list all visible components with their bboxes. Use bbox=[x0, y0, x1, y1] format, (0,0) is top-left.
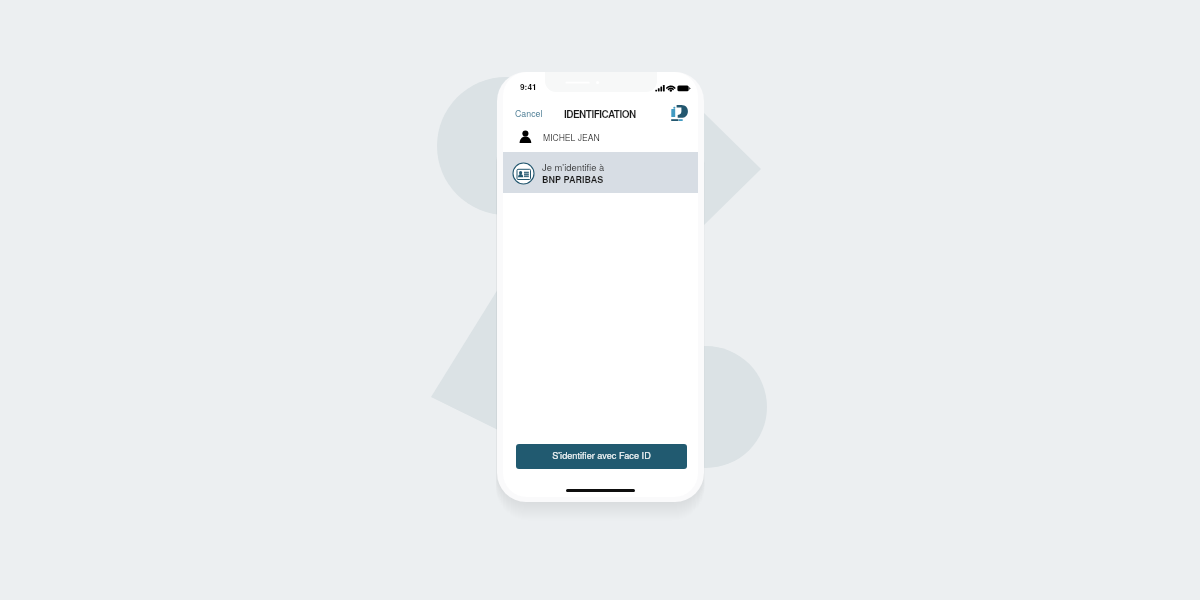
staticText: Cancel bbox=[515, 107, 543, 120]
button[interactable]: MICHEL JEAN bbox=[503, 125, 698, 145]
staticText: MICHEL JEAN bbox=[543, 131, 600, 143]
staticText: Je m'identifie à bbox=[542, 160, 605, 173]
staticText: S'identifier avec Face ID bbox=[552, 448, 651, 461]
staticText: BNP PARIBAS bbox=[542, 173, 604, 186]
button[interactable]: S'identifier avec Face ID bbox=[516, 444, 687, 469]
button[interactable]: Je m'identifie à bbox=[503, 152, 698, 193]
staticText: IDENTIFICATION bbox=[564, 107, 636, 121]
other: iD BankID logo bbox=[671, 105, 688, 122]
button[interactable]: Cancel bbox=[503, 100, 551, 127]
staticText: 9:41 bbox=[520, 81, 537, 93]
